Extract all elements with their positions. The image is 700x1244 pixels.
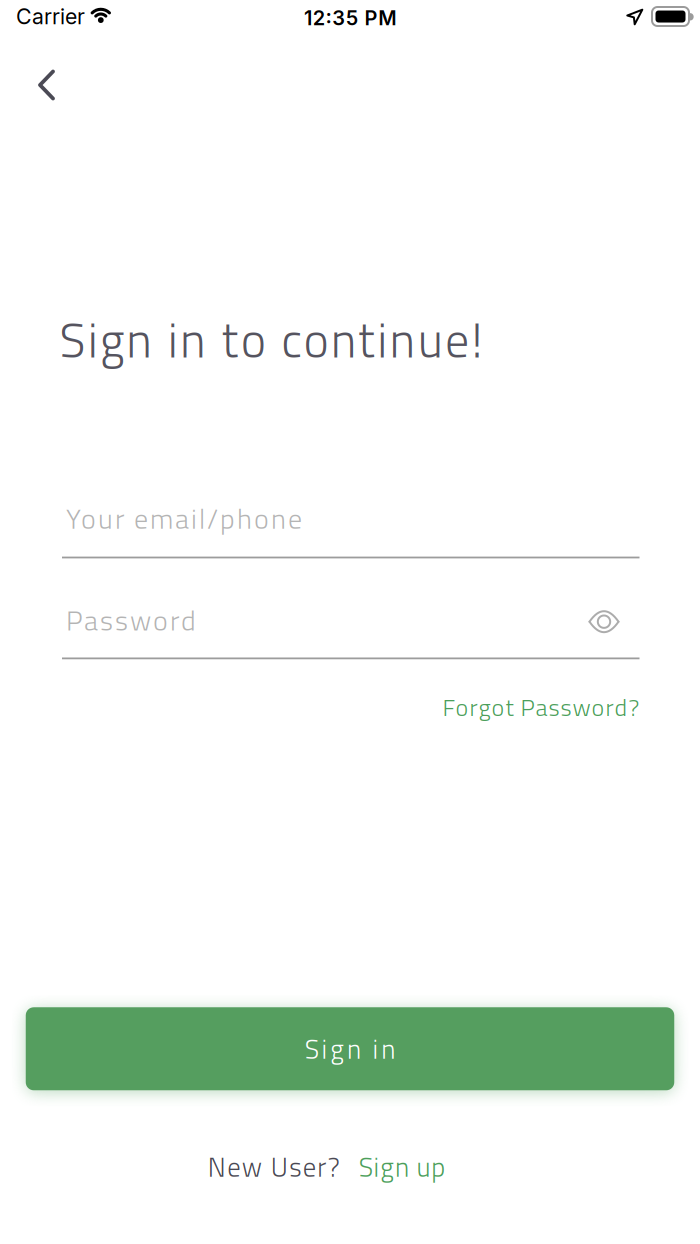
button[interactable]: Forgot Password? — [442, 689, 639, 725]
button[interactable]: Sign in — [26, 1007, 674, 1090]
staticText: 12:35 PM — [304, 6, 396, 30]
staticText: Password — [66, 599, 196, 641]
button[interactable]: Show password — [588, 609, 639, 631]
staticText: Sign in to continue! — [59, 303, 482, 376]
staticText: Carrier — [16, 4, 85, 29]
button[interactable]: Back — [37, 69, 55, 101]
button[interactable]: Sign up — [359, 1147, 445, 1187]
staticText: Forgot Password? — [442, 689, 639, 725]
staticText: Sign up — [359, 1147, 445, 1187]
staticText: Sign in — [305, 1028, 395, 1069]
staticText: Your email/phone — [66, 497, 302, 540]
staticText: New User? — [208, 1147, 340, 1187]
